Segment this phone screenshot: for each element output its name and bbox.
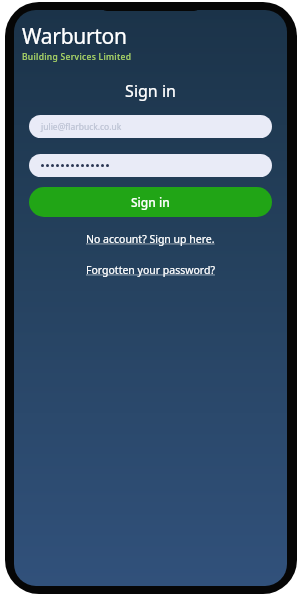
staticText: Forgotten your password? xyxy=(86,263,215,277)
other: Warburton logo xyxy=(22,22,127,51)
button[interactable]: Forgotten your password? xyxy=(14,259,287,281)
staticText: julie@flarbuck.co.uk xyxy=(41,121,122,133)
button[interactable]: No account? Sign up here. xyxy=(14,228,287,250)
staticText: Sign in xyxy=(131,194,170,210)
staticText: Building Services Limited xyxy=(22,51,132,63)
button[interactable]: Sign in xyxy=(29,187,272,217)
staticText: Sign in xyxy=(14,80,287,102)
staticText: No account? Sign up here. xyxy=(86,232,215,246)
button[interactable]: julie@flarbuck.co.uk xyxy=(29,115,272,138)
staticText: Warburton xyxy=(22,22,127,51)
button[interactable] xyxy=(29,154,272,177)
